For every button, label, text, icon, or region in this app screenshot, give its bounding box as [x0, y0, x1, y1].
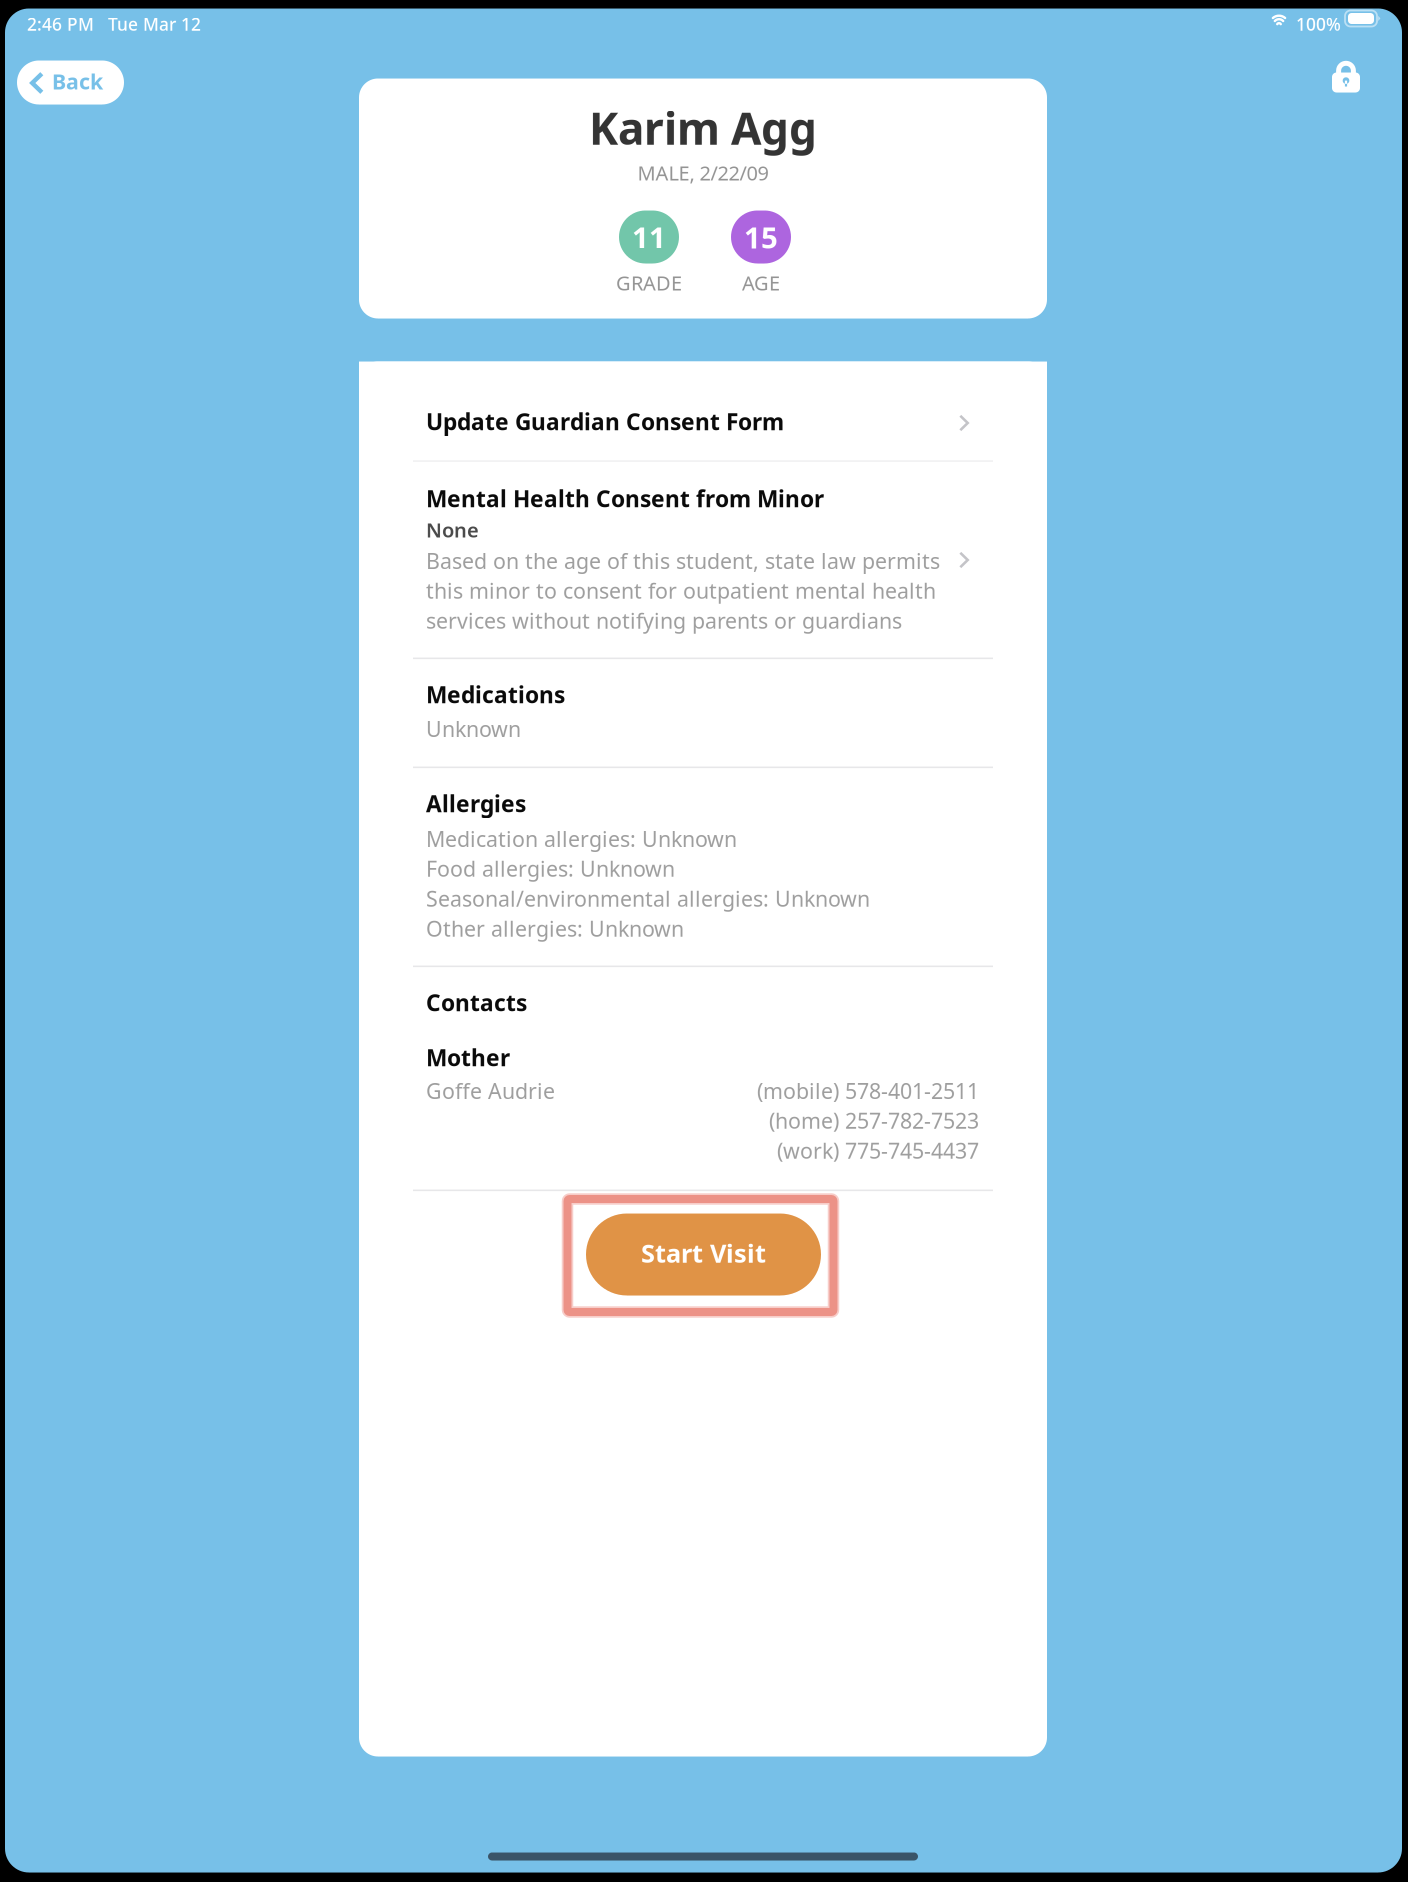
staticText: services without notifying parents or gu…	[426, 606, 902, 635]
staticText: Medication allergies: Unknown	[426, 824, 737, 853]
staticText: Goffe Audrie	[426, 1076, 555, 1105]
staticText: 2:46 PM	[27, 12, 94, 35]
staticText: (home) 257-782-7523	[769, 1106, 979, 1135]
staticText: (mobile) 578-401-2511	[757, 1076, 979, 1105]
staticText: Allergies	[426, 788, 526, 819]
staticText: Mother	[426, 1042, 510, 1073]
button[interactable]: Start Visit	[586, 1213, 821, 1295]
staticText: Update Guardian Consent Form	[426, 406, 784, 437]
staticText: Medications	[426, 679, 565, 710]
button[interactable]: Privacy lock	[1332, 58, 1360, 92]
button[interactable]: Back	[17, 60, 124, 104]
staticText: (work) 775-745-4437	[777, 1136, 979, 1165]
staticText: Contacts	[426, 987, 527, 1018]
staticText: this minor to consent for outpatient men…	[426, 576, 936, 605]
staticText: Mental Health Consent from Minor	[426, 483, 824, 514]
staticText: Based on the age of this student, state …	[426, 546, 940, 575]
staticText: Back	[52, 67, 103, 95]
button[interactable]: Update Guardian Consent Form	[359, 361, 1047, 460]
staticText: Other allergies: Unknown	[426, 914, 684, 943]
staticText: Unknown	[426, 714, 521, 743]
staticText: GRADE	[616, 269, 682, 296]
staticText: Food allergies: Unknown	[426, 854, 675, 883]
staticText: None	[426, 516, 479, 543]
staticText: MALE, 2/22/09	[637, 159, 768, 186]
staticText: 100%	[1296, 12, 1341, 35]
staticText: Karim Agg	[589, 98, 817, 157]
staticText: AGE	[742, 269, 780, 296]
staticText: Tue Mar 12	[108, 12, 201, 35]
staticText: 15	[744, 217, 778, 256]
button[interactable]: Mental Health Consent from Minor	[359, 461, 1047, 657]
staticText: 11	[632, 217, 666, 256]
staticText: Start Visit	[641, 1236, 766, 1270]
staticText: Seasonal/environmental allergies: Unknow…	[426, 884, 870, 913]
